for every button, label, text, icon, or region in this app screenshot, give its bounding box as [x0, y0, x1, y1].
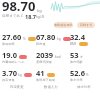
- staticText: 98.70: [2, 0, 36, 15]
- button[interactable]: 2039: [36, 50, 61, 64]
- button[interactable]: 記録する: [77, 22, 95, 28]
- button[interactable]: 27.60: [2, 32, 36, 46]
- button[interactable]: 体水分率: [67, 83, 100, 91]
- staticText: 基礎代謝量: [36, 60, 52, 64]
- button[interactable]: 32.4: [70, 32, 88, 46]
- staticText: 体幹皮下脂肪: [36, 78, 56, 82]
- button[interactable]: 3.70: [2, 68, 32, 82]
- button[interactable]: 67.80: [36, 32, 71, 46]
- button[interactable]: 19.0: [2, 50, 27, 64]
- staticText: 目標まであと: [2, 14, 24, 19]
- staticText: kg: [57, 37, 61, 41]
- staticText: kg: [18, 73, 22, 77]
- staticText: 体水分率: [77, 85, 91, 89]
- staticText: 筋肉量: [36, 42, 46, 46]
- button[interactable]: 41: [36, 68, 56, 82]
- staticText: 32.4: [70, 32, 85, 42]
- staticText: 18.7: [25, 13, 36, 20]
- button[interactable]: 数値入力: [34, 83, 67, 91]
- staticText: 19.0: [2, 50, 17, 60]
- button[interactable]: 設定変更: [0, 83, 34, 91]
- button[interactable]: 52.6: [70, 68, 89, 82]
- staticText: 内臓脂肪レベル: [2, 60, 25, 64]
- staticText: kg/月: [36, 14, 45, 19]
- staticText: 2039: [36, 50, 54, 60]
- staticText: 41: [36, 68, 45, 78]
- staticText: 67.80: [36, 32, 56, 42]
- staticText: %: [23, 37, 26, 41]
- staticText: kg: [37, 8, 42, 13]
- button[interactable]: 53: [70, 50, 84, 64]
- staticText: 27.60: [2, 32, 22, 42]
- staticText: 記録する: [80, 23, 93, 27]
- staticText: 体組成を測る: [54, 23, 73, 27]
- staticText: 体水分率: [70, 78, 83, 82]
- staticText: kcal: [55, 55, 61, 59]
- staticText: %: [86, 73, 89, 77]
- staticText: 推定骨量: [2, 78, 15, 82]
- staticText: 体脂肪率: [2, 42, 15, 46]
- staticText: 数値入力: [44, 85, 58, 89]
- staticText: 3.70: [2, 68, 17, 78]
- button[interactable]: 体組成を測る: [54, 22, 73, 28]
- staticText: 52.6: [70, 68, 85, 78]
- staticText: 53: [70, 50, 79, 60]
- staticText: 体内年齢: [70, 60, 83, 64]
- staticText: 才: [80, 55, 84, 59]
- staticText: BMI: [70, 42, 77, 46]
- staticText: 設定変更: [10, 85, 24, 89]
